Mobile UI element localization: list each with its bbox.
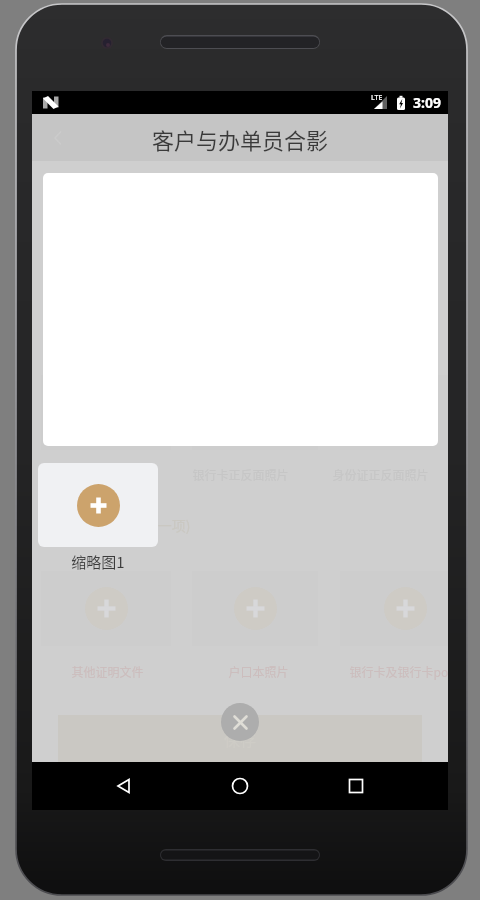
staticText: 客户与办单员合影 [152, 123, 329, 155]
staticText: 3:09 [413, 93, 441, 112]
other: Add photo [77, 484, 120, 527]
button[interactable]: Recents [332, 762, 380, 810]
button[interactable]: Close [221, 703, 259, 741]
staticText: 银行卡及银行卡pos… [349, 663, 448, 680]
button[interactable]: Add photo [38, 463, 158, 547]
staticText: 其他证明文件 [71, 663, 144, 680]
staticText: 户口本照片 [228, 663, 289, 680]
staticText: 银行卡正反面照片 [192, 466, 289, 483]
staticText: LTE [371, 93, 383, 103]
staticText: (至少选一项) [111, 515, 191, 535]
staticText: 身份证正反面照片 [332, 466, 429, 483]
button[interactable]: Home [216, 762, 264, 810]
staticText: 保存 [224, 727, 257, 750]
staticText: 缩略图1 [71, 551, 125, 573]
button[interactable]: Back [100, 762, 148, 810]
